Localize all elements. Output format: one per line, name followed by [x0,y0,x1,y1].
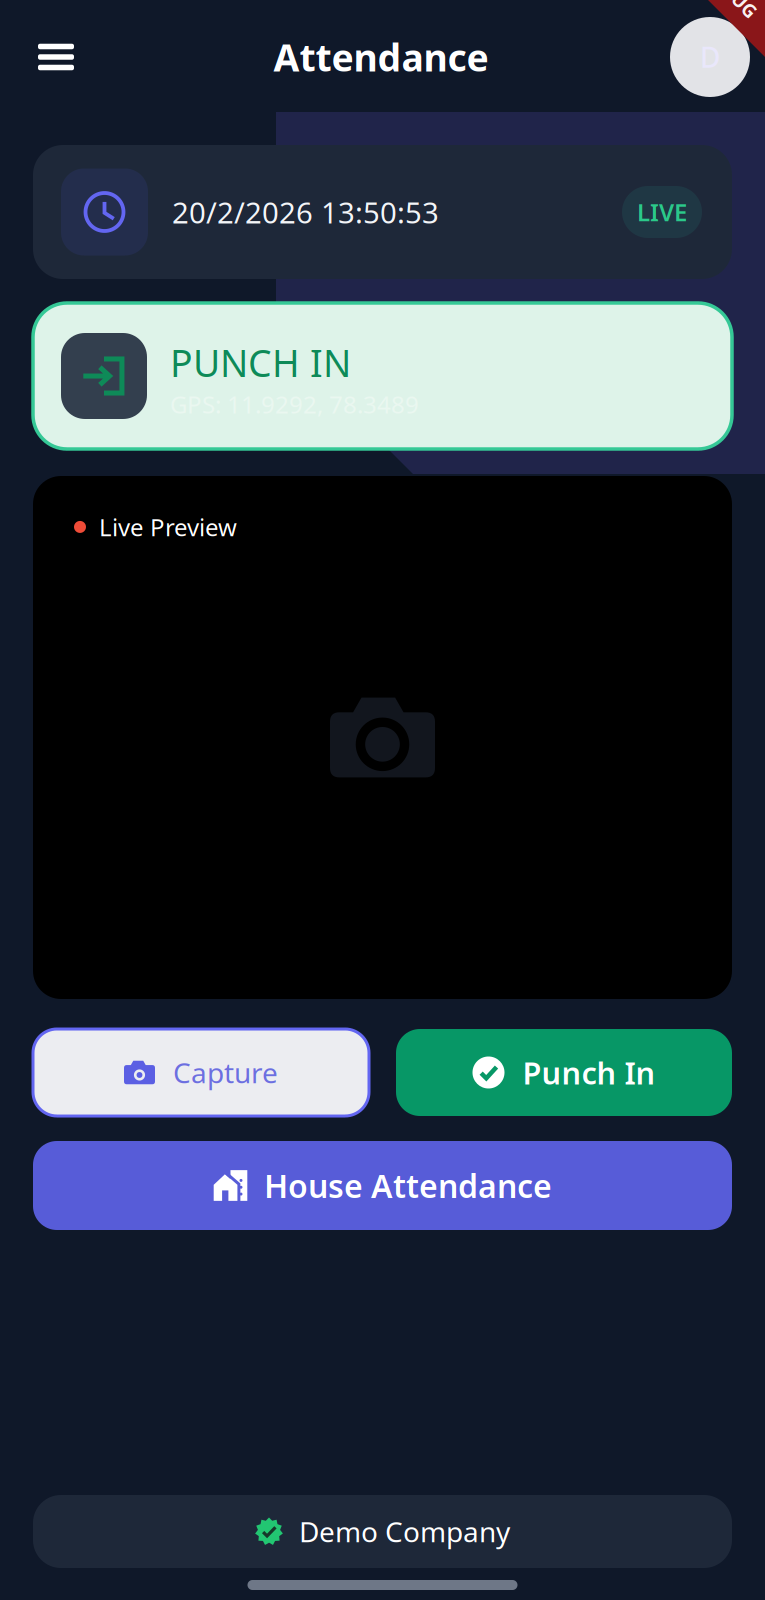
button[interactable]: House Attendance [0,1141,765,1230]
staticText: Attendance [273,32,488,82]
button[interactable]: PUNCH IN [0,303,765,449]
staticText: Capture [173,1054,278,1091]
staticText: Punch In [522,1052,655,1093]
staticText: D [700,38,720,76]
staticText: House Attendance [264,1164,552,1207]
staticText: LIVE [637,196,687,228]
button[interactable]: Demo Company [0,1495,765,1568]
staticText: DEBUG [700,0,764,5]
button[interactable]: Capture [33,1029,369,1116]
button[interactable]: Profile [670,17,750,97]
button[interactable]: Punch In [396,1029,732,1116]
staticText: GPS: 11.9292, 78.3489 [170,388,419,420]
button[interactable]: Menu [20,17,92,97]
staticText: Demo Company [299,1513,510,1550]
staticText: 20/2/2026 13:50:53 [172,192,439,231]
staticText: Live Preview [99,511,237,543]
staticText: PUNCH IN [170,338,351,387]
